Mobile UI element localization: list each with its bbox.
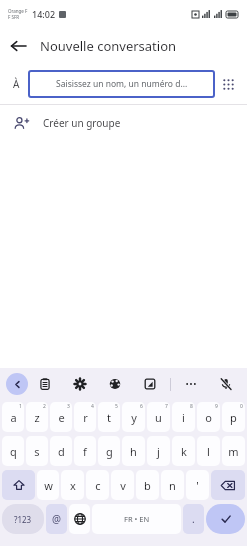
staticText: h [130,444,137,459]
staticText: @ [52,512,61,526]
button[interactable]: . [183,504,204,534]
staticText: 7 [165,403,168,410]
staticText: g [106,444,113,459]
staticText: 4 [91,403,94,410]
button[interactable]: More options [180,373,202,395]
button[interactable]: l [197,436,220,466]
staticText: f [83,444,87,459]
button[interactable]: c [86,470,109,500]
staticText: 0 [240,403,243,410]
staticText: FR • EN [124,514,150,524]
staticText: z [34,410,40,425]
button[interactable]: Change language [69,504,90,534]
staticText: s [34,444,40,459]
button[interactable]: f [74,436,96,466]
button[interactable]: n [161,470,184,500]
button[interactable]: m [222,436,245,466]
button[interactable]: Theme [104,373,126,395]
button[interactable]: Backspace [211,470,245,500]
staticText: k [181,444,187,459]
button[interactable]: z [26,402,48,432]
button[interactable]: Créer un groupe [0,105,247,141]
button[interactable]: FR • EN [92,504,181,534]
button[interactable]: Expand toolbar [6,373,28,395]
button[interactable]: j [147,436,170,466]
staticText: a [10,410,17,425]
button[interactable]: Shift [2,470,35,500]
staticText: n [169,478,176,493]
staticText: d [58,444,65,459]
staticText: Saisissez un nom, un numéro d... [56,78,188,90]
staticText: l [207,444,210,459]
staticText: i [182,410,185,425]
button[interactable]: k [172,436,195,466]
button[interactable]: v [111,470,134,500]
button[interactable]: s [26,436,48,466]
staticText: r [83,410,88,425]
staticText: y [131,410,137,425]
staticText: p [230,410,237,425]
staticText: ?123 [14,514,32,525]
staticText: 9 [215,403,218,410]
button[interactable]: Enter [206,504,245,534]
button[interactable]: ' [186,470,209,500]
button[interactable]: Saisissez un nom, un numéro d... [28,70,215,98]
button[interactable]: w [37,470,59,500]
button[interactable]: p [222,402,245,432]
button[interactable]: @ [46,504,67,534]
staticText: 5 [115,403,118,410]
staticText: j [157,444,160,459]
staticText: 6 [140,403,143,410]
staticText: 3 [67,403,70,410]
button[interactable]: x [61,470,84,500]
button[interactable]: h [122,436,145,466]
button[interactable]: Clipboard [34,373,56,395]
staticText: 14:02 [32,8,56,20]
staticText: F SFR [8,14,20,20]
button[interactable]: y [122,402,145,432]
button[interactable]: Back [0,28,36,64]
staticText: À [13,77,20,91]
staticText: Nouvelle conversation [40,37,177,55]
button[interactable]: a [2,402,24,432]
button[interactable]: ?123 [2,504,44,534]
staticText: b [144,478,151,493]
button[interactable]: e [50,402,72,432]
button[interactable]: Settings [69,373,91,395]
button[interactable]: Dialpad [215,71,241,97]
staticText: u [155,410,162,425]
staticText: Créer un groupe [43,116,121,130]
staticText: x [70,478,76,493]
staticText: ' [196,478,199,493]
button[interactable]: Resize [139,373,161,395]
staticText: 1 [19,403,22,410]
button[interactable]: Voice input off [215,373,237,395]
staticText: w [44,478,53,493]
button[interactable]: b [136,470,159,500]
button[interactable]: u [147,402,170,432]
staticText: Orange F [8,8,28,14]
button[interactable]: i [172,402,195,432]
staticText: c [95,478,101,493]
button[interactable]: g [98,436,120,466]
staticText: . [192,512,195,526]
staticText: e [58,410,65,425]
button[interactable]: r [74,402,96,432]
button[interactable]: t [98,402,120,432]
staticText: 8 [190,403,193,410]
staticText: t [107,410,111,425]
button[interactable]: d [50,436,72,466]
staticText: m [228,444,239,459]
staticText: q [10,444,17,459]
staticText: 2 [43,403,46,410]
staticText: v [120,478,126,493]
button[interactable]: q [2,436,24,466]
staticText: o [205,410,212,425]
button[interactable]: o [197,402,220,432]
